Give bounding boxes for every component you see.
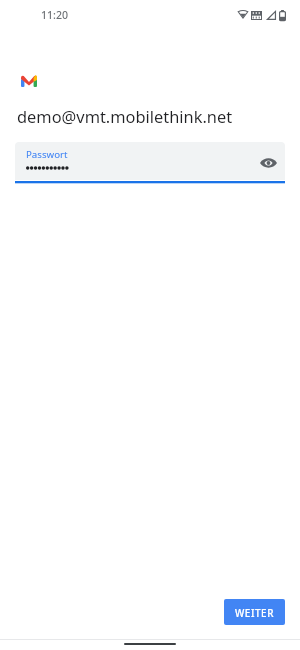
button[interactable]: WEITER	[224, 599, 285, 625]
staticText: WEITER	[235, 606, 274, 619]
button[interactable]: Passwort	[15, 142, 285, 180]
button[interactable]: Show password	[252, 147, 284, 179]
staticText: 11:20	[41, 8, 69, 22]
staticText: Passwort	[26, 148, 68, 161]
staticText: demo@vmt.mobilethink.net	[17, 105, 233, 127]
